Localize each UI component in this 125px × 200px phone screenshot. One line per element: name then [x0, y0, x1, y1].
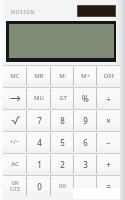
staticText: M+: [81, 72, 90, 80]
button[interactable]: +: [97, 153, 120, 175]
button[interactable]: MR: [27, 65, 51, 87]
button[interactable]: Backspace: [3, 87, 27, 109]
other: On Clear entry: [10, 180, 20, 192]
staticText: ×: [106, 115, 111, 126]
staticText: 2: [60, 159, 65, 170]
other: Sign change: [10, 138, 20, 146]
staticText: 3: [83, 159, 88, 170]
button[interactable]: =: [97, 175, 120, 197]
staticText: +: [106, 159, 111, 170]
button[interactable]: ÷: [97, 87, 120, 109]
staticText: 5: [60, 137, 65, 148]
staticText: NUSIGN: [11, 9, 35, 16]
staticText: 8: [60, 115, 65, 126]
staticText: C/CE: [10, 186, 20, 192]
staticText: 0: [37, 181, 42, 192]
other: Square root: [11, 116, 20, 125]
button[interactable]: 7: [27, 109, 51, 131]
staticText: M-: [59, 72, 67, 80]
staticText: 4: [37, 137, 42, 148]
staticText: ÷: [106, 93, 111, 104]
staticText: OFF: [103, 72, 115, 80]
button[interactable]: 2: [51, 153, 74, 175]
staticText: 7: [37, 115, 42, 126]
staticText: 1: [37, 159, 42, 170]
button[interactable]: Sign change: [3, 131, 27, 153]
staticText: 9: [83, 115, 88, 126]
staticText: MU: [34, 94, 44, 102]
button[interactable]: 4: [27, 131, 51, 153]
button[interactable]: .: [74, 175, 97, 197]
staticText: 6: [83, 137, 88, 148]
staticText: AC: [11, 160, 19, 168]
button[interactable]: 00: [51, 175, 74, 197]
other: Backspace: [10, 95, 21, 102]
staticText: ON: [11, 180, 19, 186]
staticText: MC: [10, 72, 20, 80]
staticText: −: [106, 137, 111, 148]
button[interactable]: 3: [74, 153, 97, 175]
button[interactable]: MU: [27, 87, 51, 109]
button[interactable]: 5: [51, 131, 74, 153]
button[interactable]: M+: [74, 65, 97, 87]
button[interactable]: −: [97, 131, 120, 153]
button[interactable]: 8: [51, 109, 74, 131]
staticText: .: [84, 181, 87, 192]
staticText: +/−: [10, 138, 20, 146]
staticText: %: [82, 93, 89, 104]
staticText: 00: [59, 182, 66, 190]
button[interactable]: M-: [51, 65, 74, 87]
button[interactable]: GT: [51, 87, 74, 109]
staticText: MR: [34, 72, 44, 80]
button[interactable]: OFF: [97, 65, 120, 87]
button[interactable]: ×: [97, 109, 120, 131]
staticText: =: [106, 181, 111, 192]
button[interactable]: On Clear entry: [3, 175, 27, 197]
staticText: GT: [59, 94, 67, 102]
button[interactable]: 9: [74, 109, 97, 131]
button[interactable]: 0: [27, 175, 51, 197]
button[interactable]: %: [74, 87, 97, 109]
button[interactable]: 6: [74, 131, 97, 153]
button[interactable]: MC: [3, 65, 27, 87]
button[interactable]: 1: [27, 153, 51, 175]
button[interactable]: AC: [3, 153, 27, 175]
button[interactable]: Square root: [3, 109, 27, 131]
